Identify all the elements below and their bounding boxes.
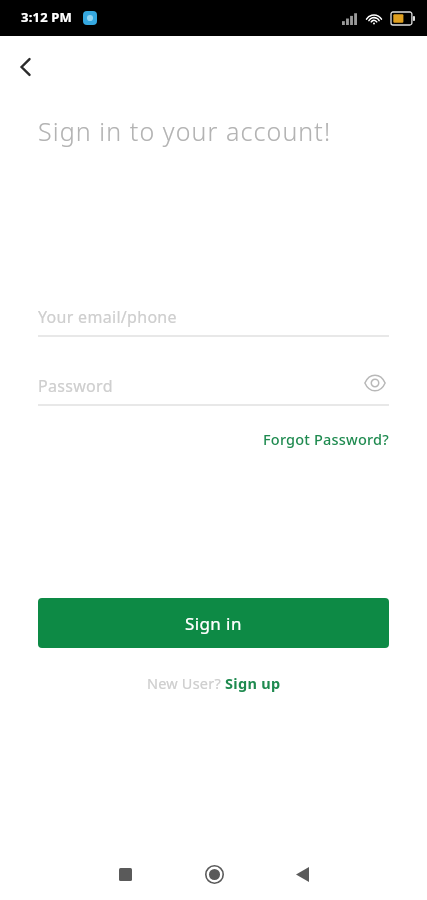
button[interactable]: Sign in	[38, 598, 389, 648]
button[interactable]: Back	[4, 45, 48, 89]
button[interactable]: Recent apps	[105, 854, 145, 894]
staticText: Sign in to your account!	[38, 114, 332, 148]
button[interactable]: Forgot Password?	[231, 424, 389, 454]
staticText: Forgot Password?	[263, 429, 389, 449]
staticText: New User?	[147, 673, 225, 693]
button[interactable]: Show password	[358, 366, 392, 400]
button[interactable]: Home	[194, 854, 234, 894]
staticText: Password	[38, 375, 113, 397]
staticText: 3:12 PM	[21, 8, 73, 26]
button[interactable]: Password	[38, 365, 389, 406]
button[interactable]: Your email/phone	[38, 296, 389, 337]
staticText: Your email/phone	[38, 306, 177, 328]
button[interactable]: Back	[282, 854, 322, 894]
button[interactable]: Sign up	[225, 673, 281, 693]
staticText: Sign in	[185, 612, 242, 635]
staticText: Sign up	[225, 673, 281, 693]
